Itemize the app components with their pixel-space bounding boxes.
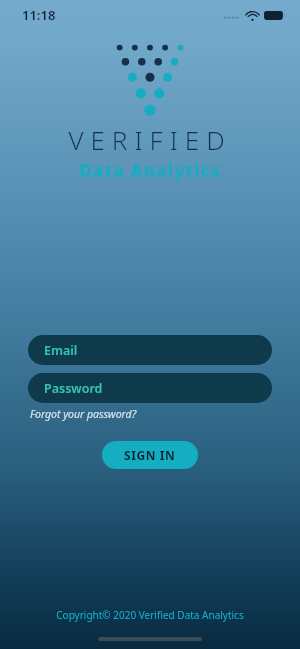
staticText: Copyright© 2020 Verified Data Analytics — [56, 608, 244, 622]
staticText: Password — [44, 380, 103, 397]
staticText: Data Analytics — [79, 159, 221, 182]
staticText: SIGN IN — [124, 447, 176, 463]
button[interactable]: SIGN IN — [102, 441, 198, 469]
button[interactable]: Email — [28, 335, 272, 365]
staticText: 11:18 — [22, 6, 56, 24]
staticText: Email — [44, 342, 78, 359]
staticText: Forgot your password? — [30, 407, 137, 421]
staticText: VERIFIED — [68, 122, 232, 157]
button[interactable]: Forgot your password? — [30, 406, 137, 422]
button[interactable]: Password — [28, 373, 272, 403]
